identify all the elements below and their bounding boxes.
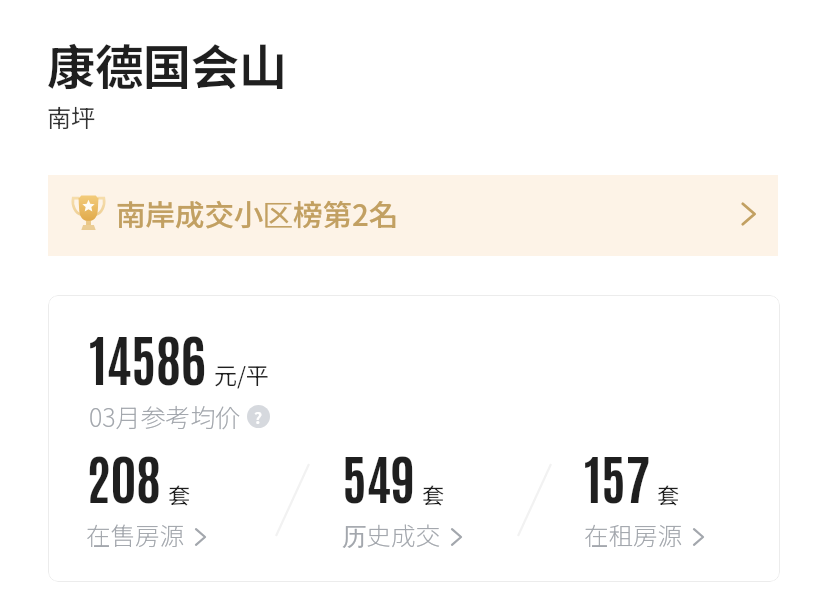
- staticText: 元/平: [214, 357, 270, 390]
- staticText: 康德国会山: [47, 29, 288, 99]
- staticText: ?: [254, 405, 263, 428]
- staticText: 历史成交: [342, 517, 440, 553]
- staticText: 套: [168, 478, 191, 510]
- staticText: 套: [422, 478, 445, 510]
- staticText: 14586: [89, 321, 206, 392]
- button[interactable]: 208: [86, 441, 213, 554]
- button[interactable]: 南岸成交小区榜第2名: [48, 175, 778, 256]
- staticText: 157: [584, 441, 650, 511]
- staticText: 在租房源: [584, 517, 682, 552]
- button[interactable]: 549: [342, 441, 469, 555]
- staticText: 549: [342, 441, 415, 511]
- staticText: 208: [86, 441, 161, 511]
- staticText: 套: [657, 478, 680, 510]
- button[interactable]: 价格说明: [247, 405, 270, 428]
- staticText: 在售房源: [86, 517, 184, 552]
- staticText: 03月参考均价: [89, 398, 241, 434]
- button[interactable]: 157: [584, 441, 711, 554]
- staticText: 南岸成交小区榜第2名: [116, 192, 399, 235]
- staticText: 南坪: [47, 99, 95, 134]
- button[interactable]: 03月参考均价: [89, 398, 270, 434]
